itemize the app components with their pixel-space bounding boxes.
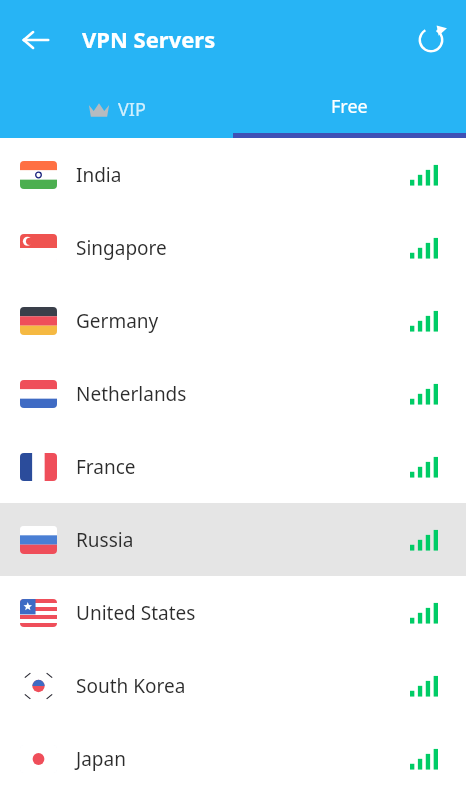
staticText: Netherlands bbox=[76, 381, 187, 407]
staticText: South Korea bbox=[76, 673, 186, 699]
staticText: VIP bbox=[118, 97, 146, 122]
button[interactable]: United States bbox=[0, 576, 466, 649]
button[interactable]: Refresh bbox=[414, 23, 448, 57]
button[interactable]: Japan bbox=[0, 722, 466, 795]
button[interactable]: France bbox=[0, 430, 466, 503]
staticText: Germany bbox=[76, 308, 159, 334]
staticText: United States bbox=[76, 600, 196, 626]
button[interactable]: India bbox=[0, 138, 466, 211]
button[interactable]: South Korea bbox=[0, 649, 466, 722]
button[interactable]: Singapore bbox=[0, 211, 466, 284]
staticText: France bbox=[76, 454, 136, 480]
button[interactable]: Germany bbox=[0, 284, 466, 357]
staticText: Russia bbox=[76, 527, 134, 553]
staticText: Japan bbox=[76, 746, 126, 772]
staticText: Singapore bbox=[76, 235, 167, 261]
staticText: India bbox=[76, 162, 122, 188]
staticText: Free bbox=[331, 94, 368, 119]
button[interactable]: Back bbox=[18, 22, 54, 58]
button[interactable]: Russia bbox=[0, 503, 466, 576]
staticText: VPN Servers bbox=[82, 24, 216, 54]
button[interactable]: Free bbox=[233, 80, 466, 138]
button[interactable]: VIP bbox=[0, 80, 233, 138]
button[interactable]: Netherlands bbox=[0, 357, 466, 430]
